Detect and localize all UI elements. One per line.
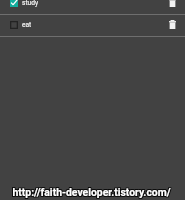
staticText: http://faith-developer.tistory.com/ — [0, 186, 185, 198]
staticText: http://faith-developer.tistory.com/ — [0, 185, 184, 197]
staticText: http://faith-developer.tistory.com/ — [0, 186, 183, 198]
staticText: http://faith-developer.tistory.com/ — [0, 187, 185, 199]
staticText: eat — [22, 21, 32, 29]
button[interactable]: study — [0, 0, 185, 14]
staticText: http://faith-developer.tistory.com/ — [0, 187, 183, 199]
button[interactable]: eat — [0, 15, 185, 36]
staticText: http://faith-developer.tistory.com/ — [0, 186, 184, 198]
button[interactable]: Delete — [166, 0, 179, 9]
staticText: http://faith-developer.tistory.com/ — [0, 185, 183, 197]
staticText: http://faith-developer.tistory.com/ — [0, 187, 184, 199]
staticText: http://faith-developer.tistory.com/ — [0, 185, 185, 197]
button[interactable]: Delete — [166, 18, 179, 31]
staticText: study — [22, 0, 39, 7]
